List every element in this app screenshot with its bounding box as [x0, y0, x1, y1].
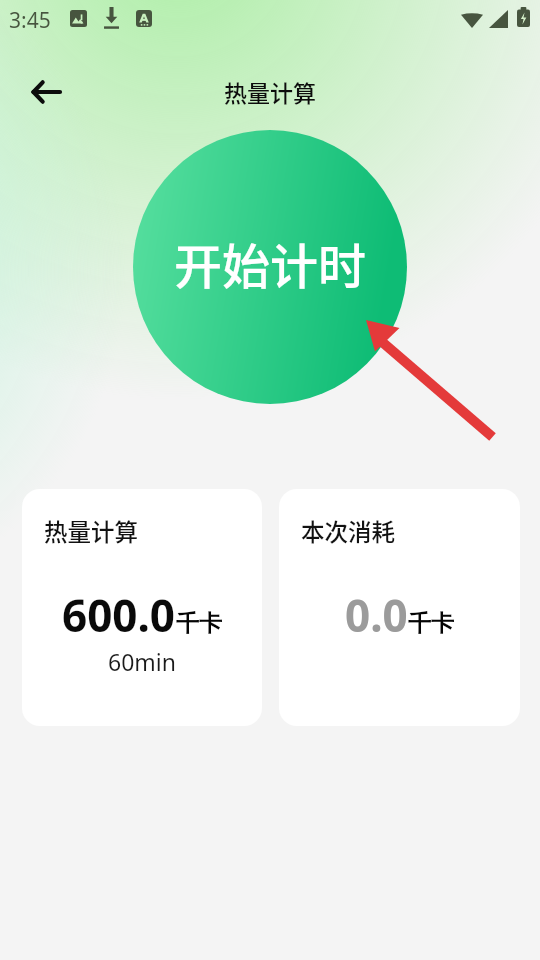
- staticText: 热量计算: [224, 75, 316, 108]
- button[interactable]: 热量计算: [22, 489, 262, 726]
- staticText: 本次消耗: [301, 514, 395, 548]
- button[interactable]: 开始计时: [133, 130, 407, 404]
- staticText: 热量计算: [44, 514, 138, 548]
- staticText: 60min: [108, 646, 176, 677]
- button[interactable]: Back: [22, 68, 70, 116]
- staticText: 千卡: [408, 609, 454, 638]
- staticText: 开始计时: [174, 228, 367, 298]
- staticText: 千卡: [176, 609, 222, 638]
- staticText: 3:45: [9, 6, 51, 35]
- staticText: 600.0: [62, 585, 176, 645]
- button[interactable]: 本次消耗: [279, 489, 520, 726]
- staticText: 0.0: [345, 585, 408, 645]
